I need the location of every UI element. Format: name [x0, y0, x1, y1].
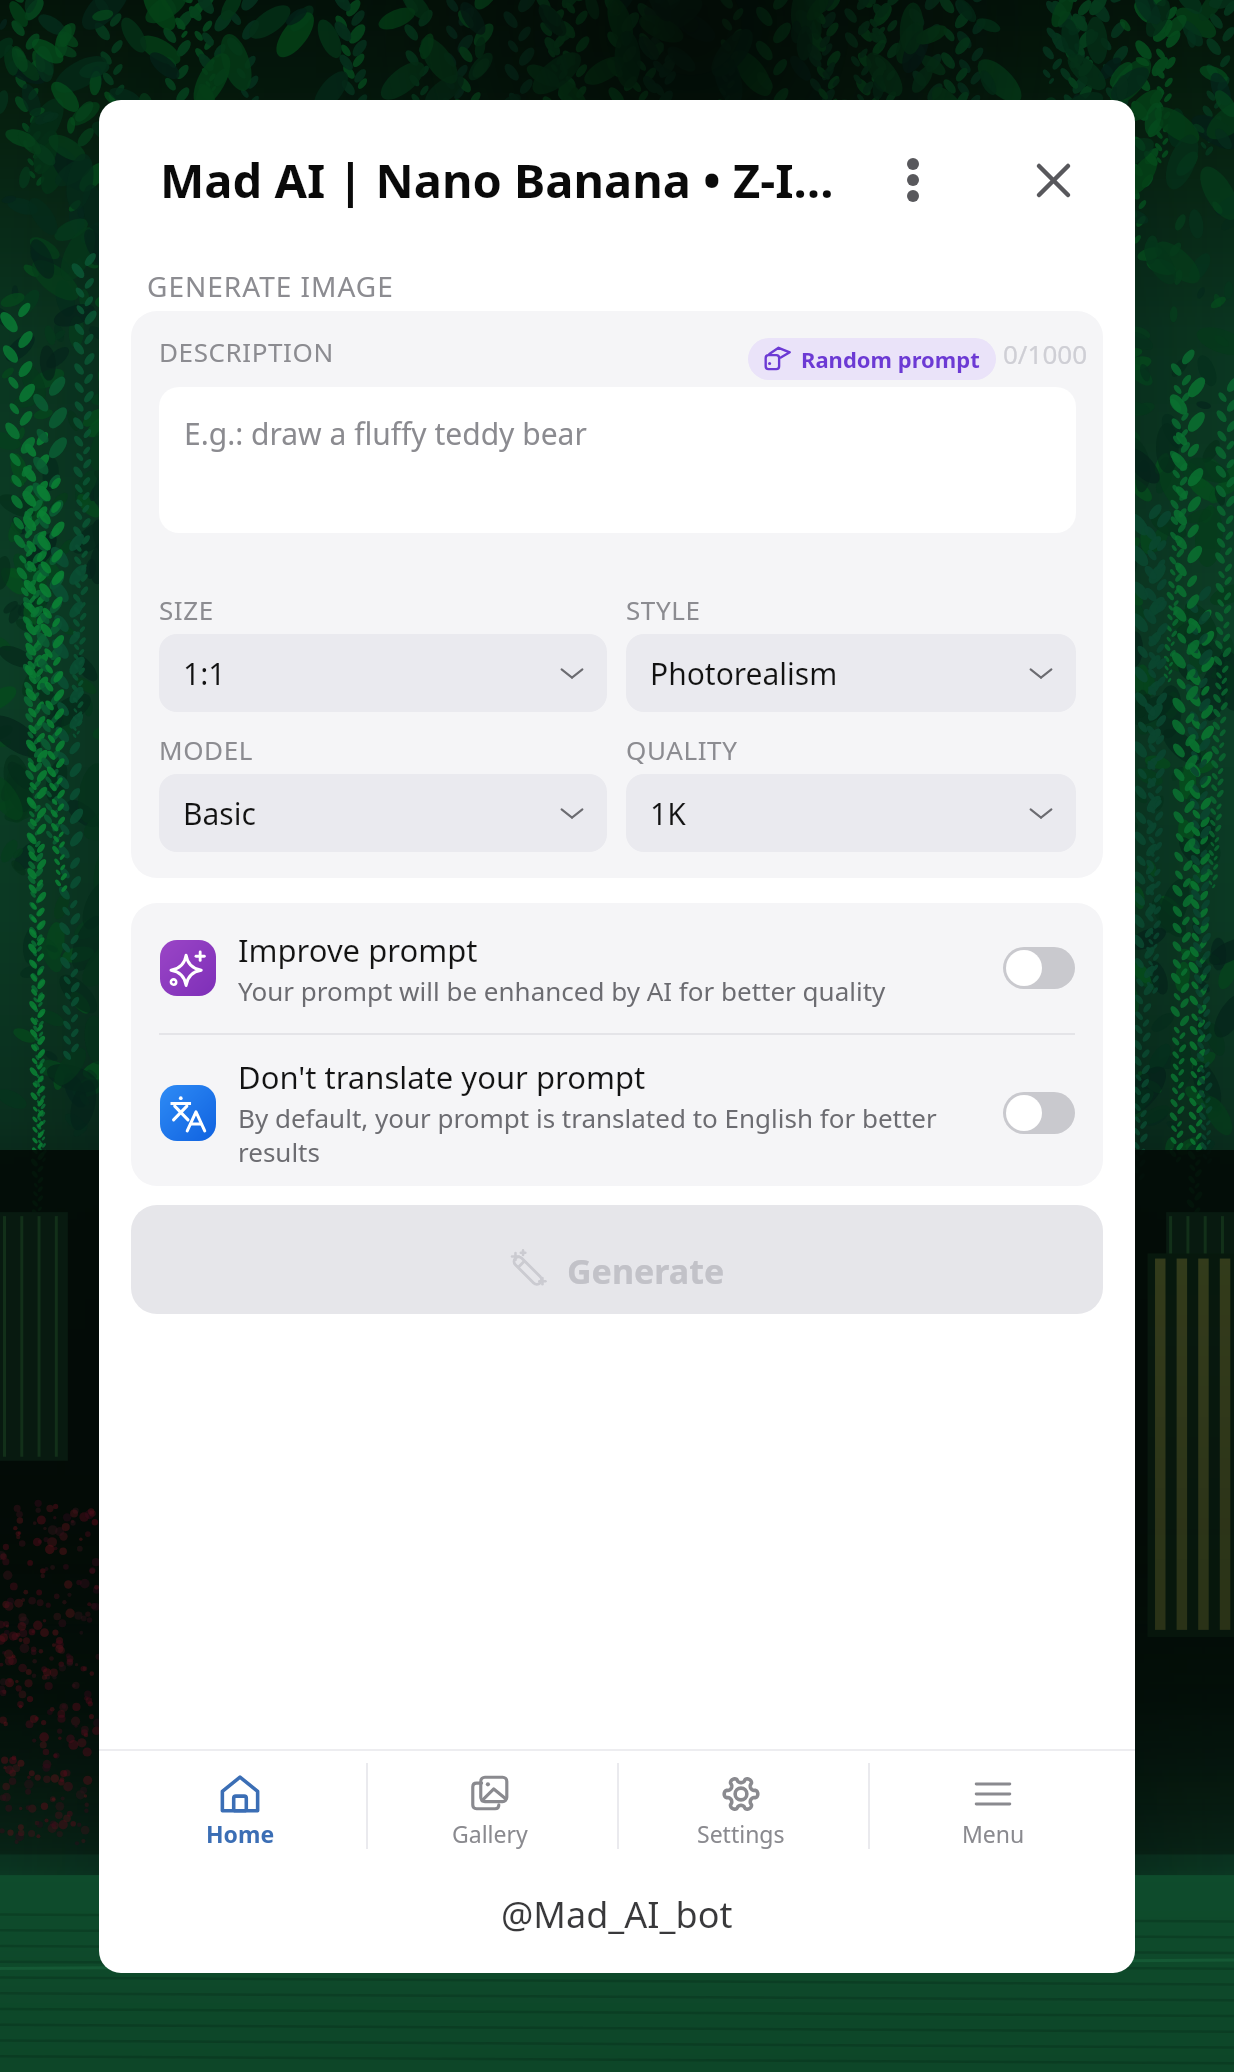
button[interactable]: 1:1 [159, 634, 607, 712]
staticText: 1K [650, 793, 686, 834]
button[interactable]: Gallery [400, 1751, 580, 1871]
button[interactable]: Improve prompt [1003, 947, 1075, 989]
staticText: 0/1000 [1003, 336, 1088, 371]
staticText: 1:1 [183, 653, 226, 694]
staticText: Menu [962, 1818, 1025, 1849]
button[interactable]: Close [1013, 140, 1093, 220]
staticText: GENERATE IMAGE [147, 267, 394, 305]
staticText: Gallery [452, 1818, 528, 1849]
button[interactable]: Prompt description input [159, 387, 1076, 533]
button[interactable]: Random prompt [748, 338, 996, 380]
staticText: QUALITY [626, 732, 738, 767]
staticText: SIZE [159, 592, 214, 627]
button[interactable]: Photorealism [626, 634, 1076, 712]
staticText: Basic [183, 793, 256, 834]
button[interactable]: More options [878, 145, 948, 215]
button[interactable]: Menu [903, 1751, 1083, 1871]
staticText: Random prompt [801, 344, 980, 374]
staticText: Photorealism [650, 653, 838, 694]
button[interactable]: Improve prompt [131, 903, 1103, 1033]
staticText: STYLE [626, 592, 701, 627]
button[interactable]: Basic [159, 774, 607, 852]
button[interactable]: Settings [651, 1751, 831, 1871]
staticText: Generate [567, 1248, 725, 1294]
button[interactable]: Don't translate your prompt [1003, 1092, 1075, 1134]
button[interactable]: Home [150, 1751, 330, 1871]
staticText: Home [206, 1818, 275, 1849]
staticText: Your prompt will be enhanced by AI for b… [238, 973, 886, 1008]
staticText: E.g.: draw a fluffy teddy bear [184, 413, 587, 454]
button[interactable]: Don't translate your prompt [131, 1039, 1103, 1186]
staticText: Mad AI | Nano Banana • Z-I… [160, 148, 860, 212]
staticText: Settings [697, 1818, 785, 1849]
button[interactable]: 1K [626, 774, 1076, 852]
staticText: Don't translate your prompt [238, 1056, 646, 1098]
staticText: @Mad_AI_bot [501, 1890, 733, 1939]
staticText: By default, your prompt is translated to… [238, 1100, 988, 1170]
staticText: Improve prompt [238, 929, 478, 971]
staticText: DESCRIPTION [159, 334, 334, 369]
staticText: MODEL [159, 732, 253, 767]
button[interactable]: Generate [131, 1205, 1103, 1314]
